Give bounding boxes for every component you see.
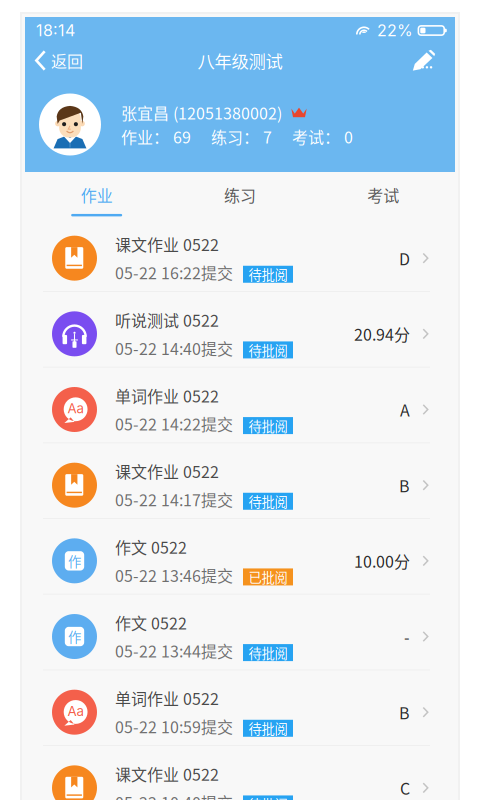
button[interactable]: 课文作业 0522 xyxy=(25,443,455,519)
staticText: 待批阅 xyxy=(248,492,287,511)
staticText: 待批阅 xyxy=(248,340,287,360)
button[interactable]: 听说测试 0522 xyxy=(25,292,455,368)
staticText: Aa xyxy=(67,400,83,416)
staticText: Aa xyxy=(67,703,83,719)
staticText: 10.00分 xyxy=(354,549,410,572)
staticText: 已批阅 xyxy=(248,567,287,587)
button[interactable]: 作 xyxy=(25,519,455,595)
staticText: 单词作业 0522 xyxy=(115,384,219,407)
staticText: 待批阅 xyxy=(248,265,287,284)
button[interactable]: 编辑 xyxy=(403,40,455,81)
staticText: 05-22 14:40提交 xyxy=(115,336,233,359)
staticText: 0 xyxy=(340,125,353,148)
staticText: 作业： xyxy=(121,125,169,148)
staticText: 作业 xyxy=(81,183,113,206)
staticText: 待批阅 xyxy=(248,719,287,738)
staticText: 作 xyxy=(68,551,81,570)
staticText: 05-22 14:17提交 xyxy=(115,488,233,511)
button[interactable]: 考试 xyxy=(312,172,455,216)
staticText: C xyxy=(400,776,410,799)
button[interactable]: 课文作业 0522 xyxy=(25,746,455,800)
staticText: 20.94分 xyxy=(354,322,410,345)
button[interactable]: Aa xyxy=(25,368,455,443)
staticText: 18:14 xyxy=(36,21,75,40)
staticText: 69 xyxy=(169,125,191,148)
staticText: 练习： xyxy=(211,125,259,148)
staticText: 05-22 13:44提交 xyxy=(115,639,233,662)
staticText: 八年级测试 xyxy=(197,48,282,73)
staticText: 05-22 13:46提交 xyxy=(115,563,233,586)
staticText: 课文作业 0522 xyxy=(115,762,219,785)
staticText: 05-22 10:59提交 xyxy=(115,715,233,738)
staticText: 7 xyxy=(259,125,272,148)
staticText: 考试： xyxy=(292,125,340,148)
staticText: 05-22 10:40提交 xyxy=(115,790,233,800)
staticText: 22% xyxy=(377,21,413,40)
staticText: 05-22 14:22提交 xyxy=(115,412,233,435)
staticText: 待批阅 xyxy=(248,416,287,435)
staticText: 作文 0522 xyxy=(115,611,187,634)
staticText: 待批阅 xyxy=(248,794,287,800)
button[interactable]: 作 xyxy=(25,595,455,670)
button[interactable]: 课文作业 0522 xyxy=(25,216,455,292)
staticText: 听说测试 0522 xyxy=(115,308,219,331)
staticText: 05-22 16:22提交 xyxy=(115,261,233,284)
staticText: D xyxy=(399,247,410,270)
staticText: 作文 0522 xyxy=(115,535,187,558)
staticText: - xyxy=(404,625,410,648)
staticText: 单词作业 0522 xyxy=(115,686,219,710)
button[interactable]: 作业 xyxy=(25,172,168,216)
staticText: A xyxy=(400,398,410,421)
button[interactable]: 返回 xyxy=(25,40,93,81)
staticText: 考试 xyxy=(367,183,399,206)
button[interactable]: 练习 xyxy=(168,172,312,216)
staticText: 课文作业 0522 xyxy=(115,459,219,483)
button[interactable]: Aa xyxy=(25,670,455,746)
staticText: 返回 xyxy=(51,49,83,72)
staticText: 课文作业 0522 xyxy=(115,232,219,256)
staticText: B xyxy=(399,474,410,497)
staticText: B xyxy=(399,701,410,724)
staticText: 待批阅 xyxy=(248,643,287,662)
staticText: 张宜昌 (12051380002) xyxy=(121,101,282,124)
staticText: 练习 xyxy=(224,183,256,206)
staticText: 作 xyxy=(68,627,81,646)
